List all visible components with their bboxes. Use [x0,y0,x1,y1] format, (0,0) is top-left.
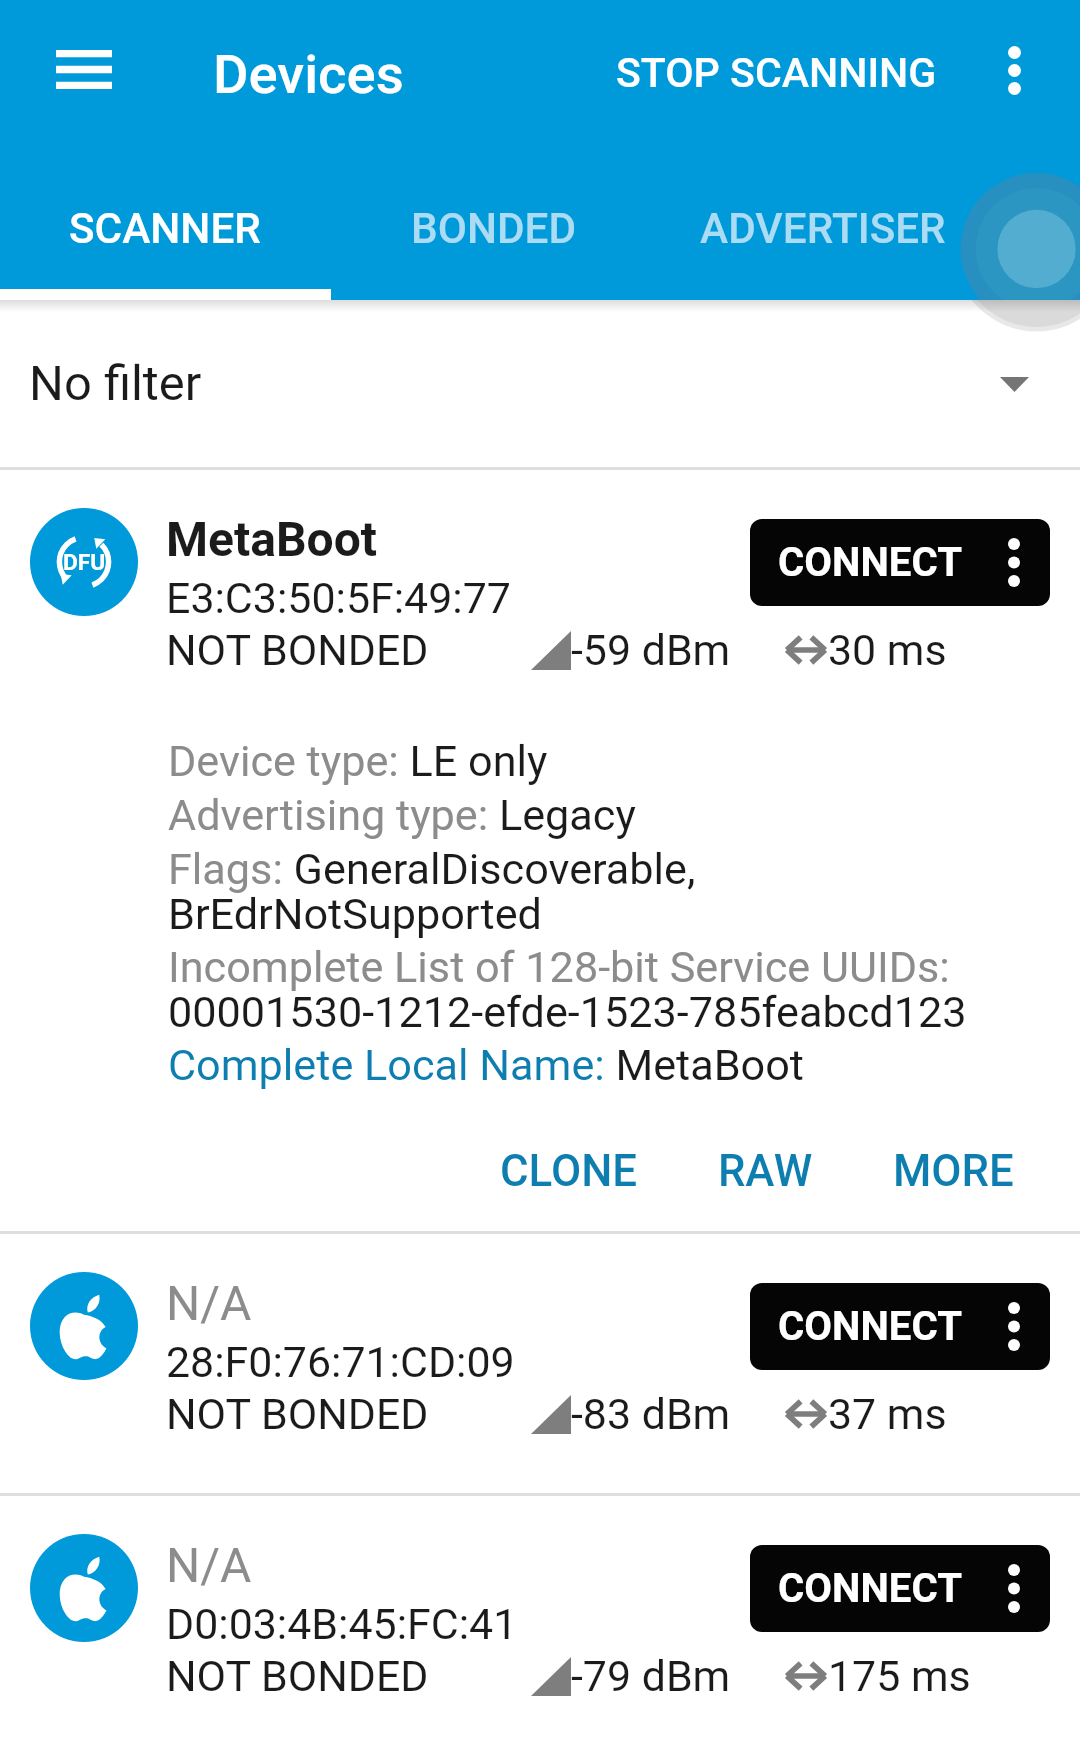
staticText: -59 dBm [571,625,731,675]
staticText: Incomplete List of 128-bit Service UUIDs… [168,942,1050,1037]
button[interactable]: More options [948,4,1080,136]
staticText: CONNECT [778,539,963,586]
button[interactable]: CONNECT [750,1545,1050,1632]
staticText: -79 dBm [571,1651,731,1701]
staticText: 30 ms [828,625,947,675]
button[interactable]: BONDED [329,139,658,300]
staticText: Complete Local Name: MetaBoot [168,1040,804,1091]
staticText: NOT BONDED [166,625,429,675]
staticText: ADVERTISER [700,204,946,254]
button[interactable]: MORE [853,1133,1054,1208]
button[interactable]: No filter [0,300,1080,467]
button[interactable]: Open navigation menu [12,0,156,139]
staticText: Device type: LE only [168,736,548,787]
button[interactable]: CONNECT [750,1283,1050,1370]
staticText: Flags: GeneralDiscoverable, BrEdrNotSupp… [168,844,1050,939]
button[interactable]: ADVERTISER [658,139,987,300]
staticText: NOT BONDED [166,1389,429,1439]
staticText: N/A [166,1275,252,1331]
staticText: CONNECT [778,1565,963,1612]
staticText: 28:F0:76:71:CD:09 [166,1337,515,1387]
staticText: 175 ms [828,1651,971,1701]
button[interactable]: STOP SCANNING [586,22,948,118]
staticText: E3:C3:50:5F:49:77 [166,573,511,623]
staticText: Advertising type: Legacy [168,790,636,841]
button[interactable]: SCANNER [0,139,329,300]
staticText: BONDED [411,204,577,254]
button[interactable]: CLONE [460,1133,678,1208]
staticText: 37 ms [828,1389,947,1439]
staticText: STOP SCANNING [616,49,937,97]
staticText: SCANNER [69,204,261,254]
staticText: MetaBoot [166,511,378,567]
staticText: RAW [718,1145,813,1196]
staticText: DFU [63,549,106,576]
staticText: Devices [213,43,404,107]
staticText: -83 dBm [571,1389,731,1439]
staticText: D0:03:4B:45:FC:41 [166,1599,518,1649]
staticText: NOT BONDED [166,1651,429,1701]
button[interactable]: CONNECT [750,519,1050,606]
staticText: N/A [166,1537,252,1593]
staticText: CONNECT [778,1303,963,1350]
staticText: CLONE [500,1145,638,1196]
staticText: No filter [29,355,202,412]
staticText: MORE [893,1145,1014,1196]
button[interactable]: RAW [678,1133,853,1208]
